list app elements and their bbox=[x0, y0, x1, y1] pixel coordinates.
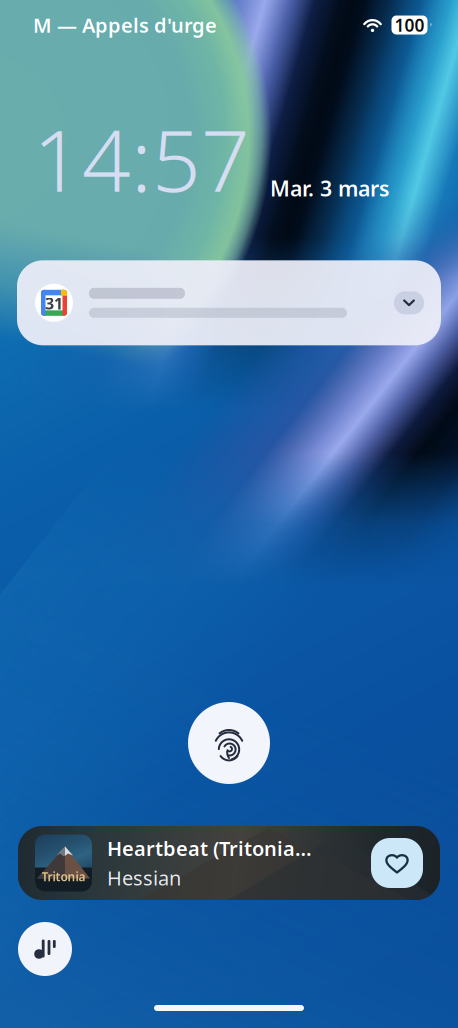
staticText: Heartbeat (Tritonia… bbox=[107, 835, 312, 861]
button[interactable]: Now Playing bbox=[18, 922, 72, 976]
staticText: M — Appels d'urge bbox=[33, 12, 217, 38]
staticText: Hessian bbox=[107, 864, 181, 891]
button[interactable]: 31 bbox=[17, 260, 441, 345]
staticText: 14:57 bbox=[33, 102, 250, 215]
button[interactable]: Tritonia bbox=[18, 826, 440, 900]
button[interactable]: Touch ID bbox=[188, 702, 270, 784]
staticText: Mar. 3 mars bbox=[270, 174, 390, 202]
staticText: 100 bbox=[394, 13, 424, 36]
staticText: Tritonia bbox=[41, 869, 85, 884]
staticText: 31 bbox=[45, 293, 63, 314]
